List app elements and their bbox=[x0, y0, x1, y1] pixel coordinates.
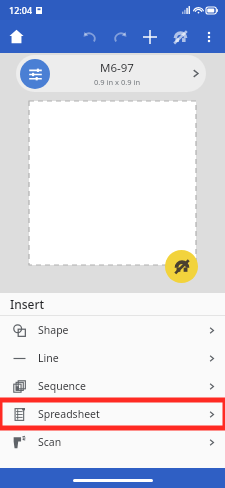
button[interactable]: Shape bbox=[0, 316, 225, 344]
staticText: Shape bbox=[38, 323, 69, 337]
staticText: Spreadsheet bbox=[38, 407, 100, 421]
staticText: Line bbox=[38, 351, 59, 365]
button[interactable]: Home bbox=[0, 20, 33, 53]
staticText: M6-97 bbox=[100, 60, 134, 76]
staticText: 0.9 in x 0.9 in bbox=[94, 77, 141, 87]
staticText: Scan bbox=[38, 435, 62, 449]
button[interactable]: M6-97 bbox=[16, 55, 206, 92]
button[interactable]: Scan bbox=[0, 428, 225, 456]
button[interactable]: Sequence bbox=[0, 372, 225, 400]
button[interactable]: Line bbox=[0, 344, 225, 372]
button[interactable]: Redo bbox=[105, 22, 135, 52]
button[interactable]: Snap off bbox=[165, 22, 195, 52]
staticText: Insert bbox=[10, 296, 45, 312]
button[interactable]: Add bbox=[135, 22, 165, 52]
button[interactable]: Snap toggle bbox=[165, 250, 198, 283]
button[interactable]: More options bbox=[195, 23, 223, 51]
button[interactable]: Undo bbox=[75, 22, 105, 52]
staticText: 12:04 bbox=[9, 4, 33, 16]
staticText: Sequence bbox=[38, 379, 87, 393]
button[interactable]: Spreadsheet bbox=[0, 400, 225, 428]
